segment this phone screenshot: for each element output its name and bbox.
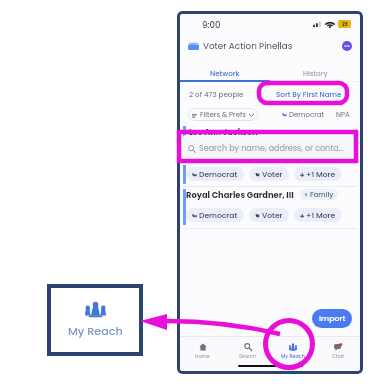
button[interactable]: Search <box>225 340 270 362</box>
button[interactable]: +1 More <box>294 167 342 181</box>
button[interactable]: Home <box>180 340 225 362</box>
staticText: 9:00 <box>202 19 221 31</box>
button[interactable]: Organisation <box>188 41 199 52</box>
button[interactable]: Democrat <box>186 208 244 222</box>
button[interactable]: +1 More <box>294 208 342 222</box>
button[interactable]: NPA <box>334 108 352 121</box>
staticText: Import <box>319 313 346 324</box>
button[interactable]: Voter <box>249 167 289 181</box>
button[interactable]: My Reach <box>270 340 315 362</box>
button[interactable]: My Reach <box>47 284 143 356</box>
staticText: +1 More <box>306 169 336 180</box>
staticText: 2 of 473 people <box>189 89 244 99</box>
staticText: Democrat <box>199 169 238 180</box>
staticText: Search by name, address, or conta... <box>199 143 344 154</box>
staticText: AB <box>344 43 350 49</box>
staticText: 23 <box>342 21 348 28</box>
staticText: My Reach <box>68 323 123 339</box>
staticText: Family <box>310 190 334 200</box>
staticText: Lee Ann Jackson <box>189 127 258 138</box>
staticText: Democrat <box>199 210 238 221</box>
button[interactable]: Democrat <box>186 167 244 181</box>
staticText: History <box>303 68 328 78</box>
button[interactable]: Sort By First Name <box>264 85 354 102</box>
button[interactable]: History <box>270 64 360 81</box>
button[interactable]: Royal Charles Gardner, III <box>186 188 338 201</box>
staticText: Voter Action Pinellas <box>203 40 293 52</box>
staticText: Voter <box>262 210 283 221</box>
button[interactable]: Search by name, address, or conta... <box>183 135 357 161</box>
staticText: Home <box>195 353 210 360</box>
button[interactable]: Import <box>312 309 352 328</box>
staticText: My Reach <box>281 353 305 360</box>
staticText: Chat <box>332 353 344 360</box>
staticText: Voter <box>262 169 283 180</box>
staticText: Search <box>239 353 257 360</box>
staticText: Royal Charles Gardner, III <box>186 189 294 201</box>
button[interactable]: Network <box>180 64 270 81</box>
button[interactable]: Voter <box>249 208 289 222</box>
button[interactable]: Profile <box>342 41 352 51</box>
button[interactable]: Democrat <box>280 108 327 121</box>
staticText: Filters & Prefs <box>200 110 246 120</box>
staticText: +1 More <box>306 210 336 221</box>
button[interactable]: Chat <box>315 340 360 362</box>
staticText: Democrat <box>289 110 325 120</box>
button[interactable]: Filters & Prefs <box>188 108 258 121</box>
staticText: Network <box>210 68 240 78</box>
staticText: NPA <box>336 110 350 120</box>
staticText: Sort By First Name <box>276 89 342 99</box>
